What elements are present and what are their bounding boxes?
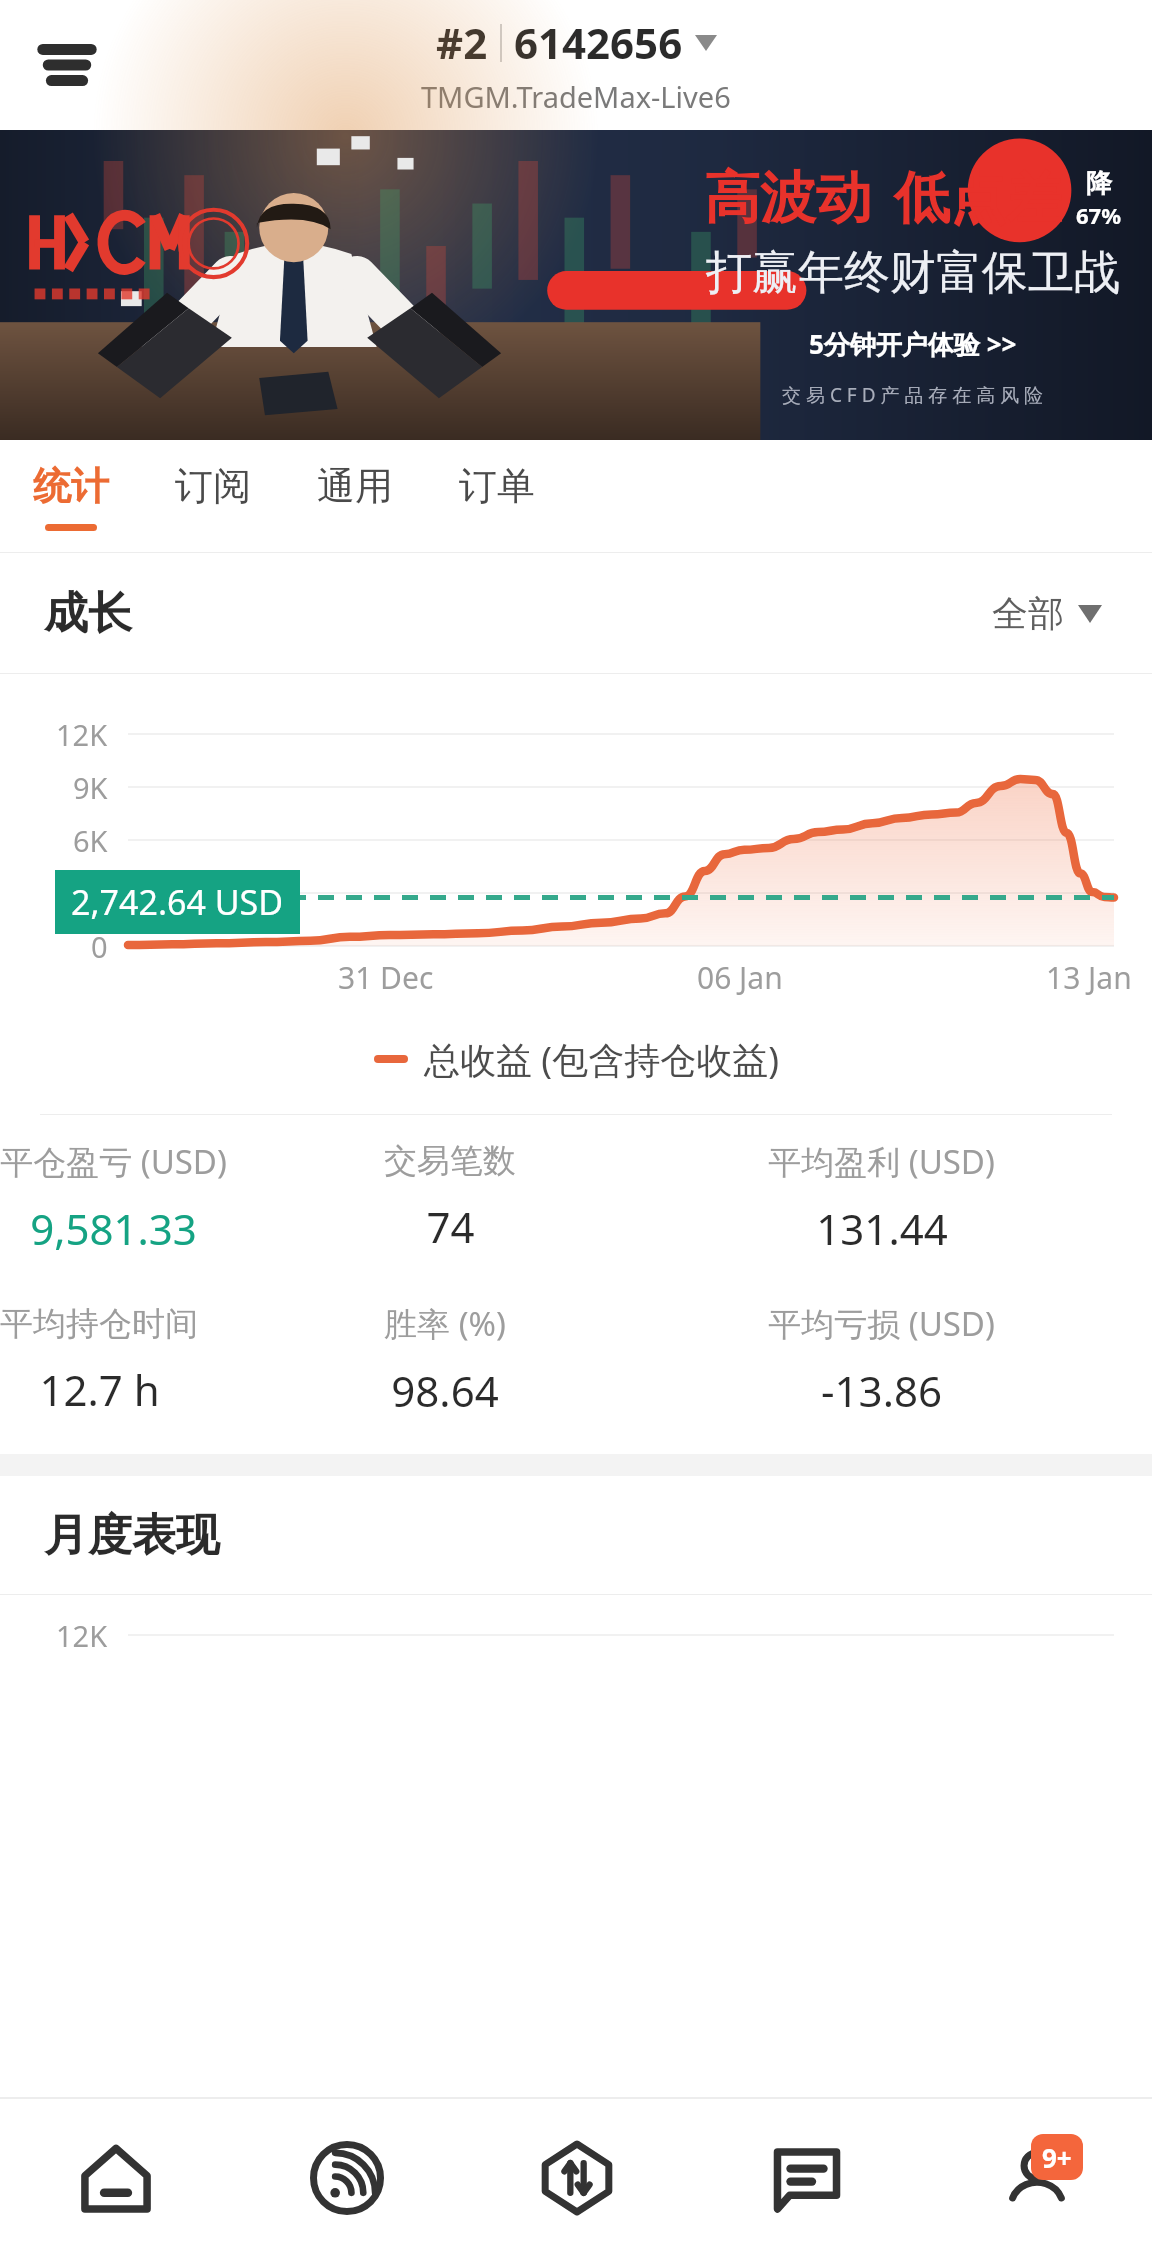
staticText: 5分钟开户体验 >> [809, 326, 1017, 362]
staticText: 9K [73, 768, 108, 807]
staticText: #2 [436, 14, 488, 71]
button[interactable]: Signals [231, 2099, 462, 2257]
staticText: 6142656 [514, 14, 683, 71]
button[interactable]: 订阅 [142, 440, 284, 552]
staticText: 12K [56, 1616, 108, 1655]
button[interactable]: 5分钟开户体验 >> [784, 316, 1042, 372]
staticText: 06 Jan [697, 957, 783, 998]
staticText: 打赢年终财富保卫战 [706, 244, 1120, 302]
button[interactable]: 胜率 (%) [384, 1280, 768, 1440]
button[interactable]: Advertisement banner [0, 130, 1152, 440]
staticText: 统计 [33, 462, 109, 510]
button[interactable]: 平仓盈亏 (USD) [0, 1115, 384, 1280]
button[interactable]: #2 [436, 14, 717, 71]
staticText: 9+ [1042, 2140, 1072, 2175]
button[interactable]: 平均盈利 (USD) [768, 1115, 1152, 1280]
staticText: 74 [426, 1198, 475, 1255]
button[interactable]: 统计 [0, 440, 142, 552]
staticText: 13 Jan [1046, 957, 1132, 998]
staticText: 全部 [992, 591, 1064, 636]
staticText: 98.64 [391, 1362, 499, 1419]
staticText: 订单 [459, 462, 535, 510]
staticText: 胜率 (%) [384, 1301, 506, 1346]
button[interactable]: Quotes [0, 2099, 231, 2257]
staticText: 成长 [44, 586, 132, 641]
button[interactable]: 通用 [284, 440, 426, 552]
button[interactable]: 交易笔数 [384, 1115, 768, 1280]
button[interactable]: 全部 [986, 585, 1108, 642]
staticText: 12.7 h [39, 1361, 160, 1418]
staticText: 9,581.33 [30, 1200, 197, 1257]
button[interactable]: 平均亏损 (USD) [768, 1280, 1152, 1440]
button[interactable]: 平均持仓时间 [0, 1280, 384, 1440]
staticText: 6K [73, 821, 108, 860]
staticText: 0 [91, 927, 108, 966]
staticText: 131.44 [816, 1200, 948, 1257]
button[interactable]: Messages [692, 2099, 922, 2257]
staticText: TMGM.TradeMax-Live6 [421, 77, 731, 116]
staticText: 交易笔数 [384, 1140, 516, 1182]
staticText: 订阅 [175, 462, 251, 510]
staticText: 12K [56, 715, 108, 754]
staticText: 总收益 (包含持仓收益) [424, 1035, 779, 1084]
button[interactable]: 订单 [426, 440, 568, 552]
staticText: 交 易 C F D 产 品 存 在 高 风 险 [782, 382, 1044, 408]
staticText: 平仓盈亏 (USD) [0, 1139, 227, 1184]
staticText: 平均盈利 (USD) [768, 1139, 995, 1184]
staticText: 平均亏损 (USD) [768, 1301, 995, 1346]
button[interactable]: Menu [28, 26, 106, 104]
staticText: 31 Dec [338, 957, 434, 998]
button[interactable]: Accounts [922, 2099, 1152, 2257]
staticText: 67% [1076, 200, 1122, 230]
staticText: 高波动 [704, 163, 872, 234]
staticText: 2,742.64 USD [71, 879, 284, 925]
staticText: 低点差 [894, 163, 1062, 234]
button[interactable]: Trade [462, 2099, 692, 2257]
staticText: 降 [1086, 167, 1112, 200]
staticText: 月度表现 [44, 1508, 220, 1563]
staticText: 通用 [317, 462, 393, 510]
staticText: -13.86 [821, 1362, 942, 1419]
staticText: 平均持仓时间 [0, 1303, 198, 1345]
